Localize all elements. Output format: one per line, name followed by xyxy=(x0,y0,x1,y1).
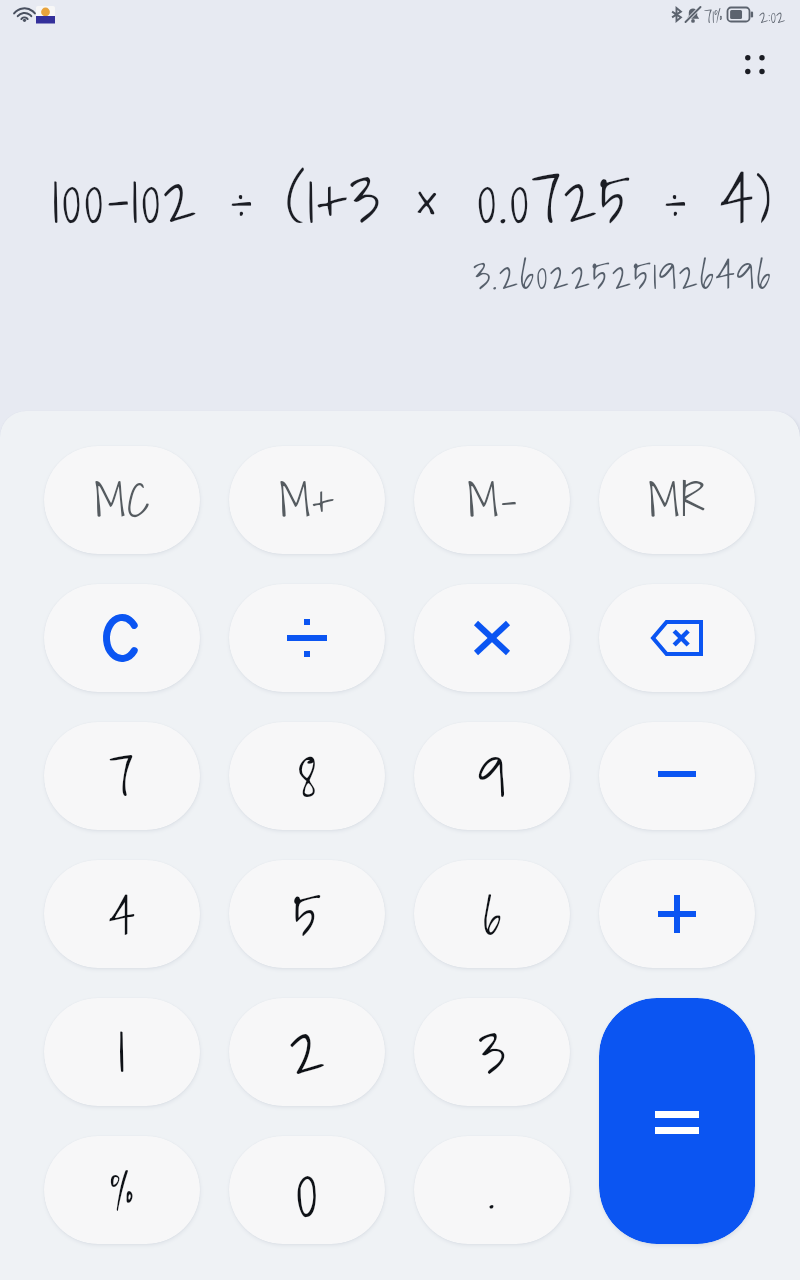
button[interactable]: back xyxy=(599,584,755,692)
staticText: 2:02 xyxy=(759,2,786,31)
staticText: 5 xyxy=(293,866,322,961)
button[interactable]: Equals xyxy=(599,998,755,1244)
staticText: 0 xyxy=(295,1136,319,1236)
staticText: 7 xyxy=(109,732,135,820)
button[interactable]: 4 xyxy=(44,860,200,968)
staticText: 8 xyxy=(298,730,317,821)
staticText: 100−102 ÷ (1+3 × 0.0725 ÷ 4) xyxy=(52,145,774,251)
button[interactable]: 1 xyxy=(44,998,200,1106)
staticText: 3.260225251926496 xyxy=(473,244,773,305)
button[interactable]: 5 xyxy=(229,860,385,968)
staticText: 3 xyxy=(478,1004,506,1099)
staticText: 1 xyxy=(118,998,126,1100)
button[interactable]: M− xyxy=(414,446,570,554)
button[interactable]: mul xyxy=(414,584,570,692)
staticText: MC xyxy=(94,462,151,538)
button[interactable]: MR xyxy=(599,446,755,554)
button[interactable]: minus xyxy=(599,722,755,830)
button[interactable]: 7 xyxy=(44,722,200,830)
staticText: 9 xyxy=(478,727,507,822)
staticText: 2 xyxy=(289,998,326,1100)
button[interactable]: 6 xyxy=(414,860,570,968)
button[interactable]: % xyxy=(44,1136,200,1244)
staticText: 4 xyxy=(109,874,136,957)
staticText: M+ xyxy=(279,462,335,538)
button[interactable]: . xyxy=(414,1136,570,1244)
button[interactable] xyxy=(44,584,200,692)
staticText: MR xyxy=(648,462,706,538)
staticText: . xyxy=(488,1144,496,1232)
staticText: % xyxy=(110,1149,134,1233)
button[interactable]: plus xyxy=(599,860,755,968)
button[interactable]: M+ xyxy=(229,446,385,554)
button[interactable]: 3 xyxy=(414,998,570,1106)
staticText: M− xyxy=(467,462,518,538)
button[interactable]: 0 xyxy=(229,1136,385,1244)
staticText: 6 xyxy=(483,877,502,956)
button[interactable]: 8 xyxy=(229,722,385,830)
button[interactable]: MC xyxy=(44,446,200,554)
button[interactable]: 2 xyxy=(229,998,385,1106)
button[interactable]: div xyxy=(229,584,385,692)
button[interactable]: More options xyxy=(726,40,774,88)
button[interactable]: 9 xyxy=(414,722,570,830)
staticText: 71% xyxy=(704,2,723,31)
